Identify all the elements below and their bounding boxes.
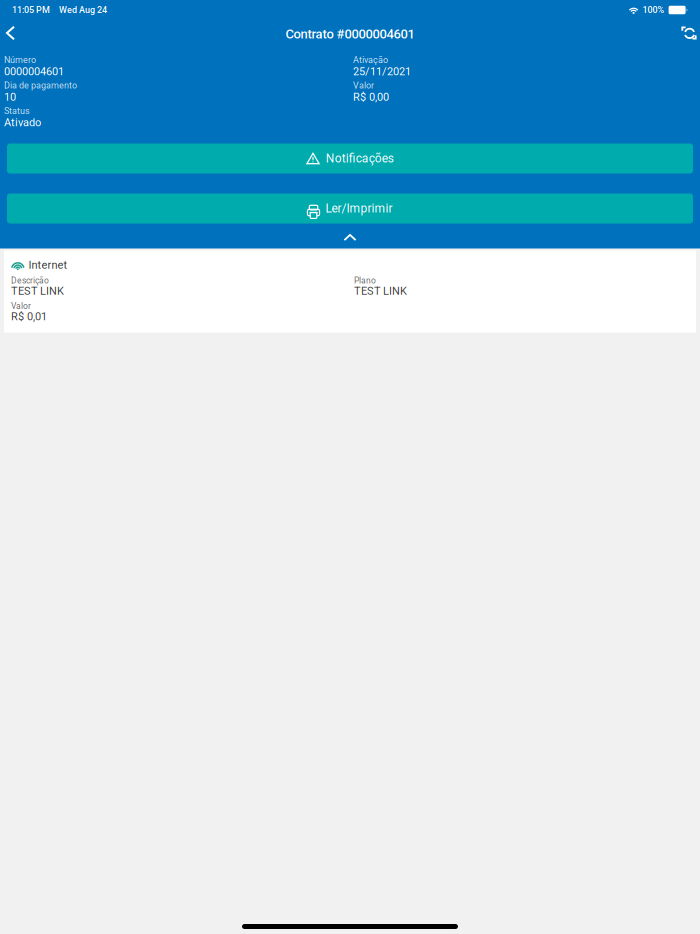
staticText: Status <box>4 106 30 116</box>
staticText: TEST LINK <box>11 285 64 297</box>
staticText: Ler/Imprimir <box>326 201 393 216</box>
staticText: 100% <box>643 5 665 15</box>
staticText: Ativação <box>353 55 388 65</box>
staticText: R$ 0,00 <box>353 91 389 103</box>
button[interactable]: Notificações <box>0 143 700 173</box>
staticText: Valor <box>11 301 31 311</box>
staticText: Contrato #0000004601 <box>285 26 414 42</box>
staticText: Descrição <box>11 275 49 285</box>
staticText: 10 <box>4 91 16 103</box>
staticText: Plano <box>354 275 376 285</box>
staticText: 11:05 PM <box>12 5 50 15</box>
button[interactable]: Refresh <box>679 19 699 47</box>
button[interactable]: Collapse details <box>0 231 700 243</box>
button[interactable]: Ler/Imprimir <box>0 193 700 223</box>
staticText: Dia de pagamento <box>4 80 77 91</box>
staticText: TEST LINK <box>354 285 407 297</box>
staticText: 0000004601 <box>4 65 64 78</box>
staticText: Wed Aug 24 <box>59 5 107 15</box>
staticText: 25/11/2021 <box>353 65 411 78</box>
staticText: R$ 0,01 <box>11 310 47 323</box>
button[interactable]: Back <box>0 20 21 46</box>
staticText: Número <box>4 55 36 65</box>
staticText: Internet <box>29 259 68 271</box>
staticText: Ativado <box>4 116 41 129</box>
staticText: Valor <box>353 80 374 91</box>
staticText: Notificações <box>326 151 394 166</box>
